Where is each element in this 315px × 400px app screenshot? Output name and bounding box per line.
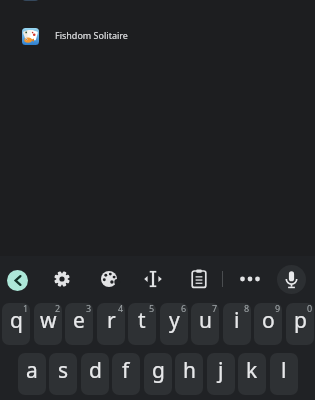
button[interactable]: l bbox=[270, 353, 298, 395]
button[interactable] bbox=[7, 270, 28, 291]
button[interactable]: j bbox=[207, 353, 235, 395]
button[interactable]: p bbox=[286, 303, 314, 345]
staticText: w bbox=[40, 306, 57, 335]
button[interactable]: q bbox=[2, 303, 30, 345]
staticText: g bbox=[152, 356, 165, 385]
button[interactable]: t bbox=[128, 303, 156, 345]
staticText: 2 bbox=[55, 303, 61, 314]
staticText: 3 bbox=[86, 303, 92, 314]
staticText: k bbox=[246, 356, 258, 385]
staticText: r bbox=[107, 306, 116, 335]
staticText: y bbox=[169, 306, 180, 335]
button[interactable]: h bbox=[175, 353, 203, 395]
button[interactable]: a bbox=[18, 353, 46, 395]
button[interactable]: d bbox=[81, 353, 109, 395]
button[interactable] bbox=[52, 269, 72, 289]
button[interactable]: s bbox=[49, 353, 77, 395]
staticText: 1 bbox=[23, 303, 29, 314]
staticText: o bbox=[262, 306, 275, 335]
button[interactable]: g bbox=[144, 353, 172, 395]
button[interactable]: w bbox=[34, 303, 62, 345]
staticText: 5 bbox=[149, 303, 155, 314]
button[interactable]: k bbox=[238, 353, 266, 395]
staticText: q bbox=[10, 306, 23, 335]
staticText: 4 bbox=[118, 303, 124, 314]
button[interactable] bbox=[237, 269, 263, 289]
staticText: s bbox=[58, 356, 69, 385]
staticText: h bbox=[183, 356, 196, 385]
staticText: t bbox=[138, 306, 146, 335]
button[interactable] bbox=[189, 268, 209, 290]
button[interactable]: i bbox=[223, 303, 251, 345]
button[interactable] bbox=[277, 265, 306, 294]
button[interactable]: f bbox=[112, 353, 140, 395]
staticText: p bbox=[294, 306, 307, 335]
staticText: l bbox=[281, 356, 287, 385]
button[interactable] bbox=[99, 269, 119, 289]
staticText: 0 bbox=[307, 303, 313, 314]
button[interactable]: o bbox=[254, 303, 282, 345]
button[interactable]: y bbox=[160, 303, 188, 345]
button[interactable] bbox=[143, 269, 163, 289]
staticText: Fishdom Solitaire bbox=[55, 29, 128, 41]
staticText: d bbox=[89, 356, 102, 385]
staticText: e bbox=[73, 306, 85, 335]
staticText: i bbox=[234, 306, 240, 335]
staticText: a bbox=[26, 356, 38, 385]
button[interactable]: u bbox=[191, 303, 219, 345]
staticText: 7 bbox=[212, 303, 218, 314]
button[interactable]: e bbox=[65, 303, 93, 345]
staticText: 8 bbox=[244, 303, 250, 314]
staticText: 9 bbox=[275, 303, 281, 314]
staticText: j bbox=[218, 356, 224, 385]
staticText: u bbox=[199, 306, 212, 335]
staticText: 6 bbox=[181, 303, 187, 314]
staticText: f bbox=[122, 356, 130, 385]
button[interactable]: r bbox=[97, 303, 125, 345]
button[interactable]: Fishdom Solitaire bbox=[0, 18, 315, 54]
